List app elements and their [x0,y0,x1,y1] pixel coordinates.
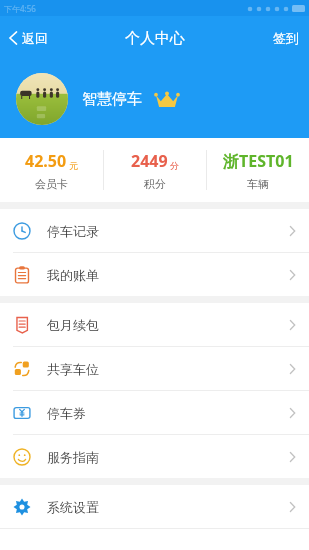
button[interactable]: 共享车位 [0,347,309,390]
button[interactable]: 我的账单 [0,253,309,296]
staticText: 停车券 [47,405,289,421]
button[interactable]: 返回 [0,24,58,52]
button[interactable]: 智慧停车 [0,60,309,138]
button[interactable]: 2449 [104,138,206,202]
staticText: 共享车位 [47,361,289,377]
staticText: 我的账单 [47,267,289,283]
staticText: 2449 [131,150,168,172]
staticText: 服务指南 [47,449,289,465]
staticText: 分 [170,160,179,171]
staticText: 个人中心 [125,29,185,48]
button[interactable]: 停车券 [0,391,309,434]
button[interactable]: 浙TEST01 [207,138,309,202]
staticText: 会员卡 [35,177,68,191]
staticText: 浙TEST01 [223,150,294,172]
staticText: 包月续包 [47,317,289,333]
staticText: 智慧停车 [82,90,142,109]
button[interactable]: 签到 [263,24,309,52]
staticText: 积分 [144,177,166,191]
staticText: 下午4:56 [4,3,36,14]
staticText: 签到 [273,30,299,46]
staticText: 返回 [22,30,48,46]
button[interactable]: 包月续包 [0,303,309,346]
staticText: 停车记录 [47,223,289,239]
button[interactable]: 42.50 [0,138,103,202]
staticText: 42.50 [25,150,67,172]
button[interactable]: 停车记录 [0,209,309,252]
button[interactable]: 系统设置 [0,485,309,528]
button[interactable]: 服务指南 [0,435,309,478]
staticText: 系统设置 [47,499,289,515]
staticText: 车辆 [247,177,269,191]
staticText: 元 [69,160,78,171]
